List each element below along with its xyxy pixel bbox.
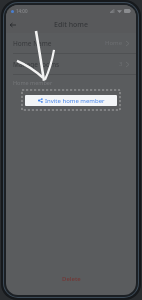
staticText: Home member bbox=[13, 79, 53, 86]
button[interactable]: Back bbox=[6, 18, 20, 32]
staticText: 14:00 bbox=[16, 8, 28, 14]
staticText: Delete bbox=[62, 275, 81, 283]
staticText: 3 bbox=[119, 60, 123, 68]
staticText: Invite home member bbox=[45, 97, 105, 105]
button[interactable]: Delete bbox=[6, 271, 136, 287]
staticText: Manage rooms bbox=[13, 60, 60, 69]
button[interactable]: Invite home member bbox=[25, 95, 117, 106]
button[interactable]: Manage rooms bbox=[6, 54, 136, 74]
staticText: Home bbox=[105, 39, 123, 47]
staticText: Home Name bbox=[13, 39, 52, 48]
button[interactable]: Home Name bbox=[6, 33, 136, 53]
staticText: Edit home bbox=[54, 20, 88, 30]
